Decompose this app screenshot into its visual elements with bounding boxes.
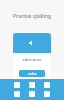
button[interactable] (44, 82, 50, 88)
button[interactable] (44, 91, 50, 97)
button[interactable] (14, 91, 20, 97)
staticText: adventure (13, 57, 51, 62)
button[interactable] (29, 91, 35, 97)
staticText: solve (28, 71, 37, 76)
button[interactable] (29, 82, 35, 88)
button[interactable] (14, 82, 20, 88)
button[interactable]: solve (19, 70, 45, 77)
staticText: Practise spelling (0, 13, 64, 20)
